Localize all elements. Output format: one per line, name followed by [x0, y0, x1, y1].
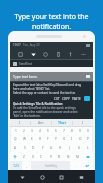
button[interactable]: E [28, 135, 36, 143]
button[interactable]: F [38, 143, 47, 152]
button[interactable]: 0 [84, 127, 92, 135]
button[interactable]: 6 [52, 127, 60, 135]
staticText: T [47, 137, 49, 141]
button[interactable]: I [73, 119, 93, 126]
staticText: To add the SendText tile to the quick se… [13, 106, 78, 118]
button[interactable]: Wi-Fi [29, 50, 37, 58]
button[interactable]: 8 [68, 127, 76, 135]
button[interactable]: 7 [60, 127, 68, 135]
button[interactable]: 3 [28, 127, 36, 135]
staticText: 2 [23, 129, 25, 133]
staticText: 123 [13, 163, 20, 168]
button[interactable]: C [37, 152, 46, 161]
button[interactable]: K [74, 143, 83, 152]
button[interactable]: Space [32, 162, 69, 169]
button[interactable]: Rotate [66, 50, 74, 58]
button[interactable]: L [83, 143, 92, 152]
staticText: That [58, 120, 66, 125]
button[interactable]: O [76, 135, 84, 143]
staticText: 0 [87, 129, 89, 133]
button[interactable]: S [20, 143, 29, 152]
staticText: L [87, 146, 89, 150]
button[interactable]: I [68, 135, 76, 143]
staticText: 5 [47, 129, 49, 133]
staticText: Y [55, 137, 57, 141]
button[interactable]: U [60, 135, 68, 143]
button[interactable]: M [73, 152, 82, 161]
button[interactable]: X [28, 152, 37, 161]
staticText: Expand the text (also SwiftKey/Gboard) a… [13, 83, 82, 91]
button[interactable]: Q [11, 135, 20, 143]
staticText: Quick Settings Tile & Notification [13, 102, 63, 106]
button[interactable]: 4 [36, 127, 44, 135]
button[interactable]: Am [31, 119, 51, 126]
button[interactable]: N [64, 152, 73, 161]
button[interactable]: Send [84, 96, 90, 101]
staticText: 3 [31, 129, 33, 133]
button[interactable]: COPY [62, 97, 70, 101]
button[interactable]: P [84, 135, 92, 143]
button[interactable]: Flashlight [54, 50, 62, 58]
staticText: SwiftKey [45, 164, 57, 168]
button[interactable]: 9 [76, 127, 84, 135]
button[interactable]: R [36, 135, 44, 143]
button[interactable]: 2 [20, 127, 28, 135]
button[interactable]: B [55, 152, 64, 161]
button[interactable]: Type text here. [10, 72, 93, 81]
button[interactable]: , [22, 161, 31, 170]
button[interactable]: D [29, 143, 38, 152]
staticText: A [14, 146, 17, 150]
staticText: SendText [19, 62, 32, 66]
button[interactable]: 1 [11, 127, 20, 135]
staticText: , [26, 164, 27, 168]
staticText: 8 [71, 129, 73, 133]
button[interactable]: 5 [44, 127, 52, 135]
button[interactable]: G [47, 143, 56, 152]
staticText: E [31, 137, 33, 141]
button[interactable]: Z [20, 152, 28, 161]
button[interactable]: Shift [10, 152, 20, 161]
button[interactable]: Menu [76, 172, 86, 182]
staticText: B [58, 155, 61, 159]
button[interactable]: A [11, 143, 20, 152]
staticText: V [50, 155, 52, 159]
staticText: G [50, 146, 53, 150]
staticText: CUT [54, 97, 60, 101]
button[interactable]: I [10, 119, 30, 126]
button[interactable]: Back [17, 172, 27, 182]
button[interactable]: T [44, 135, 52, 143]
staticText: 7 [63, 129, 65, 133]
button[interactable]: Enter [80, 161, 93, 170]
staticText: Tue, Aug 30 [23, 43, 40, 47]
button[interactable]: V [46, 152, 55, 161]
button[interactable]: J [65, 143, 74, 152]
staticText: N [67, 155, 70, 159]
staticText: S [24, 146, 26, 150]
staticText: R [39, 137, 41, 141]
button[interactable]: Settings [41, 50, 49, 58]
button[interactable]: W [20, 135, 28, 143]
staticText: D [32, 146, 35, 150]
button[interactable]: Home [37, 172, 47, 182]
staticText: O [79, 137, 82, 141]
button[interactable]: Wi-Fi off [16, 50, 24, 58]
button[interactable]: Y [52, 135, 60, 143]
button[interactable]: More [79, 50, 87, 58]
staticText: 6 [55, 129, 57, 133]
staticText: W [23, 137, 26, 141]
button[interactable]: 123 [10, 161, 22, 170]
staticText: Q [14, 137, 17, 141]
staticText: PASTE [72, 97, 81, 101]
staticText: K [78, 146, 80, 150]
staticText: COPY [62, 97, 70, 101]
button[interactable]: Delete [82, 152, 93, 161]
staticText: I [82, 120, 84, 125]
button[interactable]: Recents [56, 172, 66, 182]
staticText: Z [23, 155, 25, 159]
staticText: U [63, 137, 66, 141]
button[interactable]: H [56, 143, 65, 152]
button[interactable]: That [52, 119, 72, 126]
button[interactable]: PASTE [72, 97, 81, 101]
button[interactable]: CUT [54, 97, 60, 101]
